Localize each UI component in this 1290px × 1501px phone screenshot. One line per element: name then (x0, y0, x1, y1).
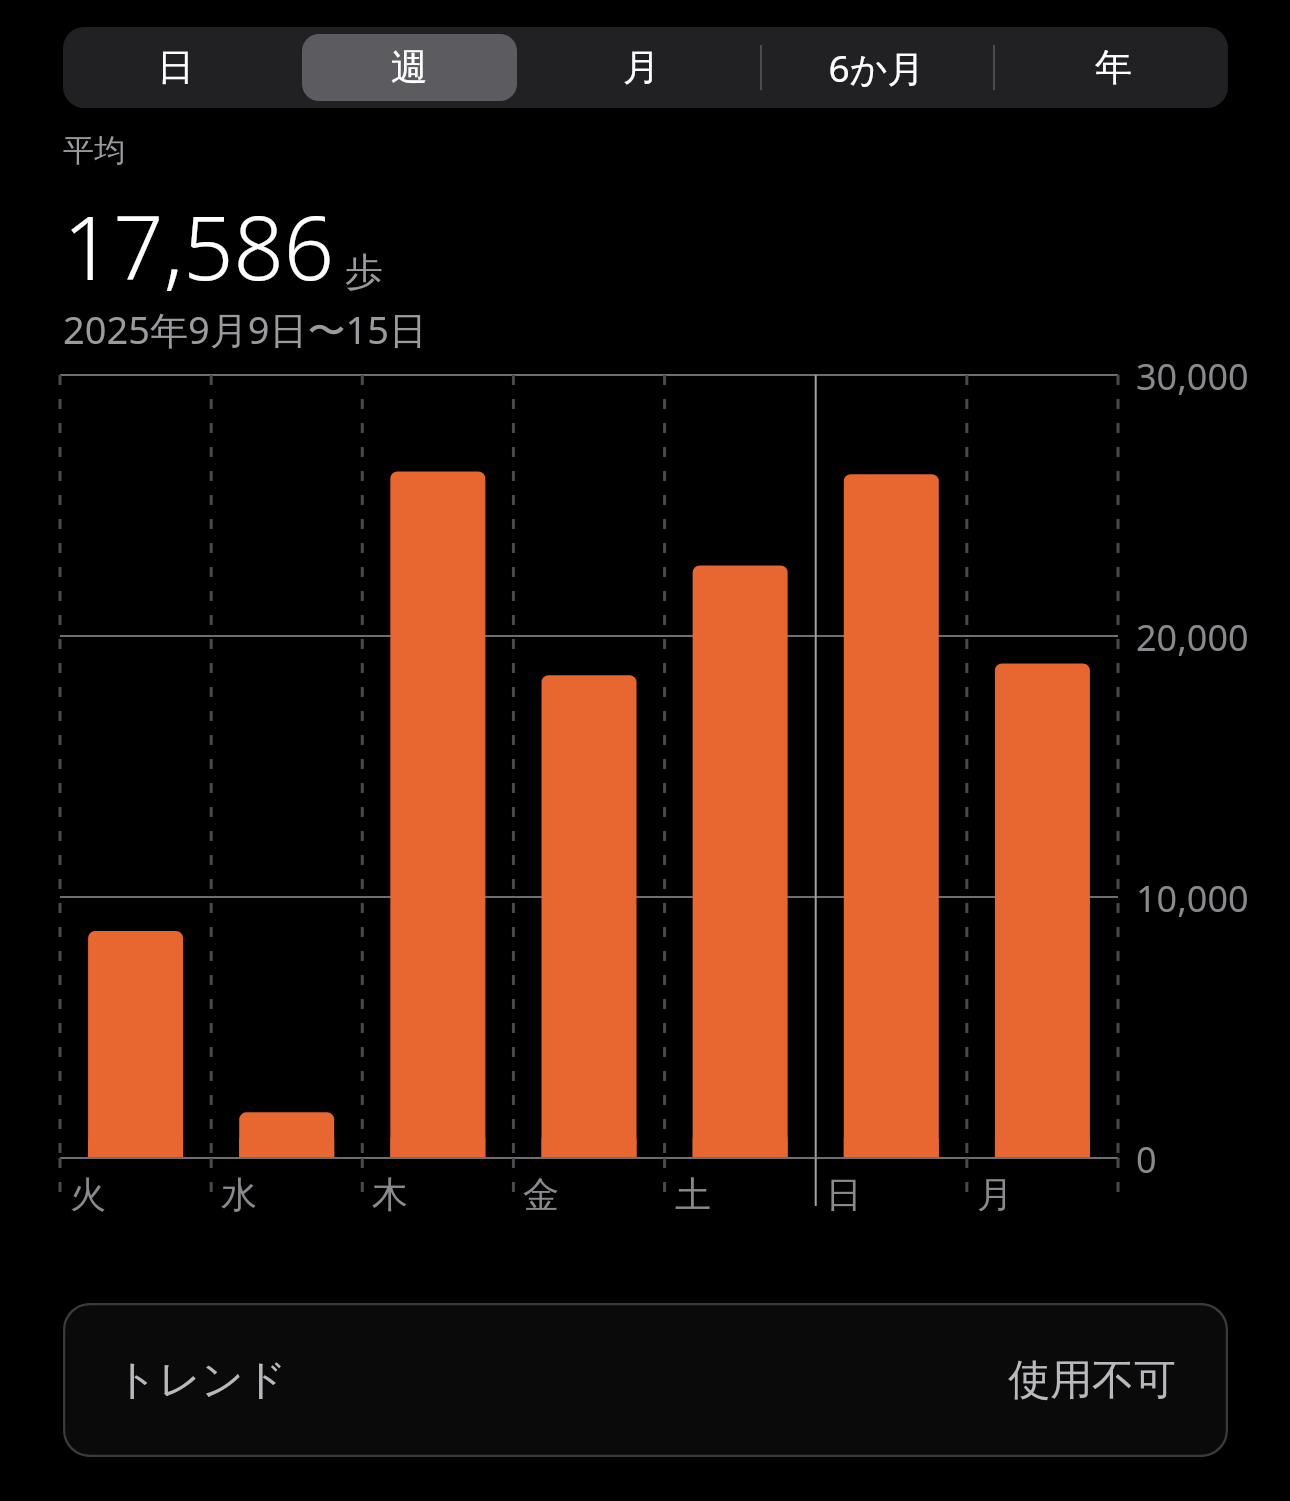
staticText: 水 (221, 1172, 257, 1217)
staticText: 平均 (63, 131, 125, 170)
button[interactable]: 日 (70, 27, 280, 108)
staticText: 17,586 (63, 186, 335, 306)
staticText: 木 (372, 1172, 408, 1217)
staticText: 土 (675, 1172, 711, 1217)
staticText: 2025年9月9日〜15日 (63, 303, 427, 355)
staticText: 30,000 (1136, 352, 1249, 401)
button[interactable]: 月 (536, 27, 746, 108)
staticText: 月 (623, 44, 660, 91)
button[interactable]: 週 (304, 27, 514, 108)
button[interactable]: 年 (1008, 27, 1218, 108)
staticText: 週 (391, 44, 428, 91)
staticText: 6か月 (828, 42, 925, 93)
staticText: 日 (157, 44, 194, 91)
staticText: 歩 (345, 248, 383, 296)
staticText: 火 (70, 1172, 106, 1217)
staticText: 金 (523, 1172, 559, 1217)
button[interactable]: トレンド (63, 1303, 1228, 1457)
staticText: 使用不可 (1008, 1354, 1176, 1407)
staticText: 年 (1095, 44, 1132, 91)
staticText: 月 (977, 1172, 1013, 1217)
staticText: トレンド (115, 1354, 287, 1407)
button[interactable]: 6か月 (771, 27, 981, 108)
staticText: 日 (826, 1172, 862, 1217)
staticText: 10,000 (1136, 874, 1249, 923)
staticText: 0 (1136, 1135, 1157, 1184)
staticText: 20,000 (1136, 613, 1249, 662)
